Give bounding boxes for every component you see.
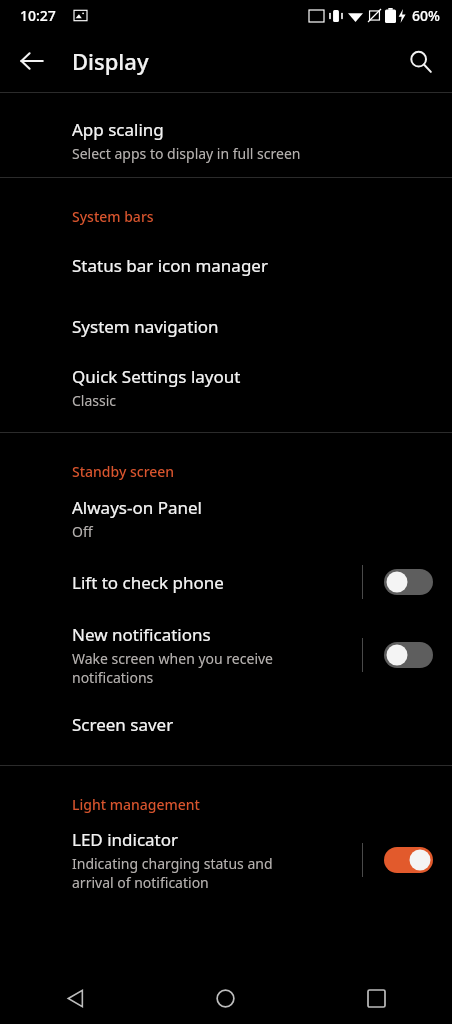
staticText: 10:27 <box>20 6 56 25</box>
button[interactable]: Search <box>396 37 444 85</box>
button[interactable]: On <box>384 845 434 875</box>
staticText: Lift to check phone <box>72 571 224 594</box>
staticText: Off <box>72 522 93 541</box>
staticText: System bars <box>72 207 154 226</box>
button[interactable]: Back <box>8 37 56 85</box>
staticText: New notifications <box>72 623 211 646</box>
button[interactable]: Off <box>384 567 434 597</box>
staticText: Indicating charging status and arrival o… <box>72 854 273 892</box>
staticText: Light management <box>72 795 200 814</box>
button[interactable]: Quick Settings layout <box>0 356 452 418</box>
button[interactable]: Lift to check phone <box>0 547 452 617</box>
button[interactable]: Screen saver <box>0 693 452 755</box>
staticText: App scaling <box>72 118 164 141</box>
staticText: Wake screen when you receive notificatio… <box>72 649 273 687</box>
staticText: Status bar icon manager <box>72 254 268 277</box>
staticText: Display <box>72 46 149 76</box>
staticText: Standby screen <box>72 462 175 481</box>
button[interactable]: Back <box>0 972 150 1024</box>
staticText: 60% <box>412 6 440 25</box>
staticText: Always-on Panel <box>72 496 202 519</box>
button[interactable]: Home <box>150 972 301 1024</box>
button[interactable]: Off <box>384 640 434 670</box>
staticText: Quick Settings layout <box>72 365 241 388</box>
staticText: Select apps to display in full screen <box>72 144 301 163</box>
button[interactable]: App scaling <box>0 107 452 173</box>
button[interactable]: LED indicator <box>0 822 452 898</box>
staticText: LED indicator <box>72 828 179 851</box>
button[interactable]: Recents <box>301 972 452 1024</box>
staticText: System navigation <box>72 315 219 338</box>
staticText: Screen saver <box>72 713 174 736</box>
button[interactable]: System navigation <box>0 296 452 356</box>
button[interactable]: New notifications <box>0 617 452 693</box>
button[interactable]: Always-on Panel <box>0 489 452 547</box>
staticText: Classic <box>72 391 117 410</box>
button[interactable]: Status bar icon manager <box>0 234 452 296</box>
